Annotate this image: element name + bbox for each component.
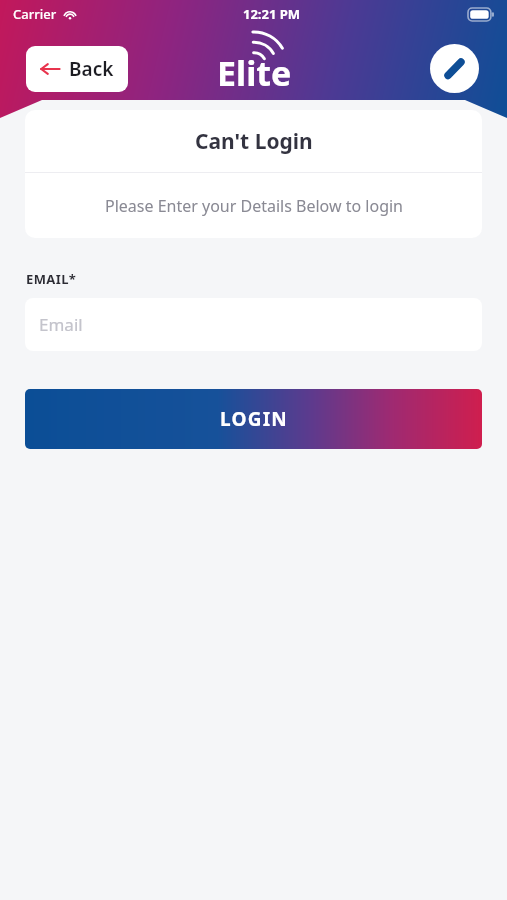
staticText: Email — [39, 313, 83, 336]
button[interactable]: Email — [25, 298, 482, 351]
button[interactable]: LOGIN — [25, 389, 482, 449]
staticText: Elite — [217, 50, 292, 96]
staticText: 12:21 PM — [243, 5, 301, 23]
staticText: Can't Login — [195, 127, 313, 156]
staticText: LOGIN — [220, 406, 288, 432]
staticText: Carrier — [13, 5, 57, 23]
button[interactable]: Edit — [430, 44, 479, 93]
staticText: EMAIL* — [26, 270, 77, 288]
button[interactable]: Back — [26, 46, 128, 92]
staticText: Please Enter your Details Below to login — [105, 195, 403, 217]
staticText: Back — [69, 56, 114, 82]
